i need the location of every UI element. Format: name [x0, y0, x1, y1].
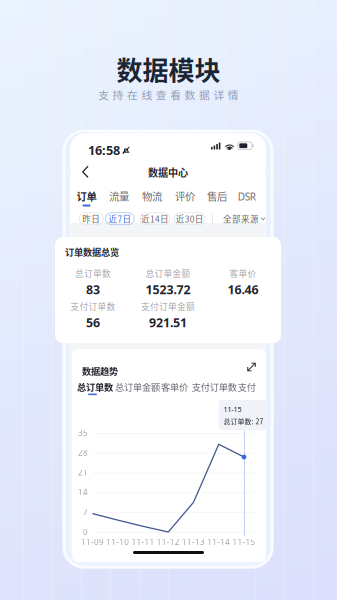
staticText: 总订单数: [77, 380, 113, 393]
staticText: 83: [86, 281, 100, 298]
staticText: 近7日: [108, 212, 131, 225]
staticText: 总订单数: 27: [223, 416, 263, 426]
staticText: 数据模块: [116, 50, 220, 88]
staticText: 总订单数: [75, 267, 111, 279]
button[interactable]: Back: [76, 162, 96, 182]
staticText: 详: [213, 87, 224, 102]
staticText: 线: [141, 87, 152, 102]
button[interactable]: 近30日: [175, 213, 205, 225]
staticText: 921.51: [149, 314, 187, 331]
staticText: 16:58: [88, 141, 120, 159]
staticText: DSR: [238, 190, 256, 203]
staticText: 客单价: [161, 380, 188, 393]
button[interactable]: Expand chart: [243, 359, 259, 375]
button[interactable]: 流量: [103, 186, 136, 206]
staticText: 0: [83, 526, 88, 537]
staticText: 查: [156, 87, 167, 102]
button[interactable]: 全部来源: [220, 213, 268, 225]
staticText: 11-11: [131, 537, 154, 547]
staticText: 11-09: [81, 537, 104, 547]
staticText: 35: [78, 427, 88, 438]
button[interactable]: 昨日: [79, 213, 103, 225]
staticText: 近14日: [141, 212, 169, 225]
button[interactable]: 近7日: [106, 213, 134, 225]
staticText: 21: [78, 467, 88, 478]
staticText: 11-15: [223, 404, 241, 414]
button[interactable]: 支付订单数: [192, 380, 237, 397]
staticText: 数: [185, 87, 196, 102]
staticText: 物流: [142, 188, 162, 204]
button[interactable]: 售后: [201, 186, 234, 206]
staticText: 11-13: [182, 537, 205, 547]
button[interactable]: 评价: [169, 186, 202, 206]
staticText: 11-12: [157, 537, 180, 547]
button[interactable]: 支付: [238, 380, 256, 397]
staticText: 客单价: [229, 267, 256, 279]
staticText: 看: [170, 87, 181, 102]
staticText: 28: [78, 447, 88, 458]
staticText: 售后: [207, 188, 227, 204]
staticText: 16.46: [227, 281, 258, 298]
staticText: 在: [127, 87, 138, 102]
button[interactable]: 客单价: [161, 380, 188, 397]
staticText: 支付: [238, 380, 256, 393]
button[interactable]: 订单: [70, 186, 103, 206]
button[interactable]: 近14日: [140, 213, 170, 225]
staticText: 支付订单数: [70, 300, 115, 312]
staticText: 11-14: [207, 537, 230, 547]
staticText: 近30日: [176, 212, 204, 225]
staticText: 支付订单金额: [141, 300, 195, 312]
staticText: 11-10: [106, 537, 129, 547]
staticText: 7: [83, 507, 88, 517]
staticText: 情: [228, 87, 239, 102]
staticText: 支: [98, 87, 109, 102]
staticText: 56: [86, 314, 100, 331]
button[interactable]: 总订单金额: [115, 380, 160, 397]
staticText: 订单数据总览: [65, 245, 119, 258]
staticText: 数据中心: [148, 165, 188, 179]
button[interactable]: 总订单数: [77, 380, 113, 397]
staticText: 持: [113, 87, 124, 102]
staticText: 11-15: [232, 537, 255, 547]
staticText: 总订单金额: [145, 267, 190, 279]
staticText: 数据趋势: [82, 364, 118, 377]
button[interactable]: DSR: [230, 186, 263, 206]
staticText: 据: [199, 87, 210, 102]
staticText: 14: [78, 487, 88, 498]
staticText: 订单: [76, 188, 96, 204]
staticText: 1523.72: [145, 281, 190, 298]
staticText: 流量: [109, 188, 129, 204]
button[interactable]: 物流: [136, 186, 169, 206]
staticText: 总订单金额: [115, 380, 160, 393]
staticText: 支付订单数: [192, 380, 237, 393]
staticText: 评价: [175, 188, 195, 204]
staticText: 昨日: [82, 212, 100, 225]
staticText: 全部来源: [223, 212, 259, 225]
